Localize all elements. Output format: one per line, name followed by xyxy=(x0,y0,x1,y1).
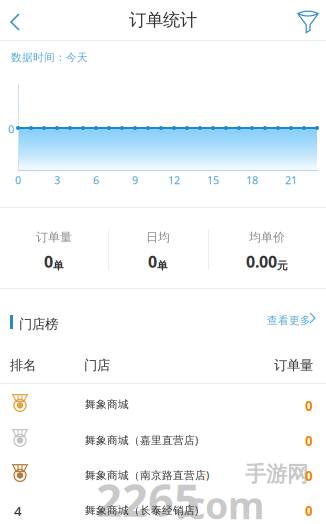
staticText: 3 xyxy=(54,173,60,187)
staticText: 日均 xyxy=(146,230,170,245)
staticText: 舞象商城（长泰经销店) xyxy=(85,503,198,517)
staticText: 0 xyxy=(148,251,157,272)
staticText: 舞象商城（嘉里直营店) xyxy=(85,433,198,447)
staticText: 数据时间：今天 xyxy=(11,51,88,64)
staticText: 0 xyxy=(305,432,313,450)
staticText: 舞象商城（南京路直营店) xyxy=(85,468,209,482)
staticText: 订单量 xyxy=(274,357,313,373)
staticText: 0 xyxy=(305,397,313,415)
button[interactable]: 舞象商城（南京路直营店) xyxy=(0,456,326,491)
staticText: 18 xyxy=(246,173,258,187)
button[interactable]: 筛选 xyxy=(297,0,319,41)
staticText: 门店 xyxy=(84,357,110,373)
staticText: 0 xyxy=(305,502,313,520)
staticText: 排名 xyxy=(10,357,36,373)
staticText: .com xyxy=(176,480,264,524)
staticText: 6 xyxy=(93,173,99,187)
staticText: 0.00 xyxy=(246,251,277,272)
button[interactable]: 4 xyxy=(0,491,326,524)
staticText: 查看更多 xyxy=(267,314,311,327)
staticText: 12 xyxy=(168,173,180,187)
button[interactable]: 舞象商城 xyxy=(0,386,326,421)
staticText: 手游网 xyxy=(245,461,308,487)
staticText: 15 xyxy=(207,173,219,187)
staticText: 单 xyxy=(157,259,168,272)
button[interactable]: 舞象商城（嘉里直营店) xyxy=(0,421,326,456)
staticText: 门店榜 xyxy=(19,316,58,332)
staticText: 0 xyxy=(305,467,313,485)
staticText: 0 xyxy=(15,173,21,187)
staticText: 订单量 xyxy=(36,230,72,245)
button[interactable]: 返回 xyxy=(0,0,40,41)
staticText: 4 xyxy=(14,502,22,520)
button[interactable]: 查看更多 xyxy=(257,300,321,336)
staticText: 0 xyxy=(8,122,14,136)
staticText: 订单统计 xyxy=(129,9,197,31)
staticText: 21 xyxy=(285,173,297,187)
staticText: 9 xyxy=(132,173,138,187)
staticText: 元 xyxy=(277,259,288,272)
staticText: 均单价 xyxy=(249,230,285,245)
staticText: 单 xyxy=(53,259,64,272)
staticText: 0 xyxy=(44,251,53,272)
staticText: 舞象商城 xyxy=(85,398,129,411)
staticText: 2265 xyxy=(96,469,200,524)
